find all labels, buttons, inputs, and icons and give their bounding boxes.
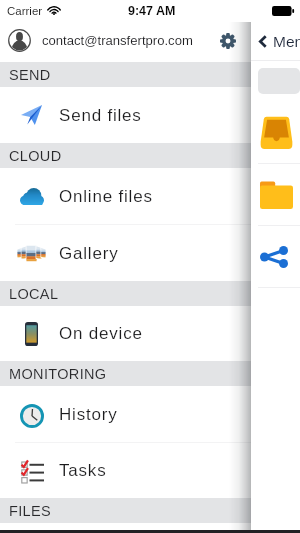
button[interactable]: Gallery xyxy=(0,225,300,281)
staticText: Gallery xyxy=(59,244,119,263)
staticText: Carrier xyxy=(7,5,43,18)
staticText: Send files xyxy=(59,106,142,125)
button[interactable]: Tasks xyxy=(0,443,300,498)
staticText: MONITORING xyxy=(9,366,107,382)
button[interactable]: Online files xyxy=(0,168,300,224)
button[interactable] xyxy=(251,102,300,163)
button[interactable]: Search xyxy=(258,68,300,94)
button[interactable] xyxy=(251,226,300,287)
staticText: LOCAL xyxy=(9,286,59,302)
staticText: On device xyxy=(59,324,143,343)
staticText: CLOUD xyxy=(9,148,62,164)
button[interactable]: Settings xyxy=(214,27,241,54)
staticText: Tasks xyxy=(59,461,107,480)
button[interactable]: Send files xyxy=(0,87,300,143)
button[interactable]: Menu xyxy=(259,33,300,50)
button[interactable]: History xyxy=(0,386,300,442)
button[interactable]: On device xyxy=(0,306,300,361)
staticText: FILES xyxy=(9,503,52,519)
staticText: SEND xyxy=(9,67,51,83)
button[interactable]: contact@transfertpro.com xyxy=(0,22,300,62)
staticText: 9:47 AM xyxy=(128,4,176,18)
staticText: History xyxy=(59,405,118,424)
button[interactable] xyxy=(251,164,300,225)
staticText: Menu xyxy=(273,33,300,50)
staticText: contact@transfertpro.com xyxy=(42,33,193,48)
staticText: Online files xyxy=(59,187,153,206)
